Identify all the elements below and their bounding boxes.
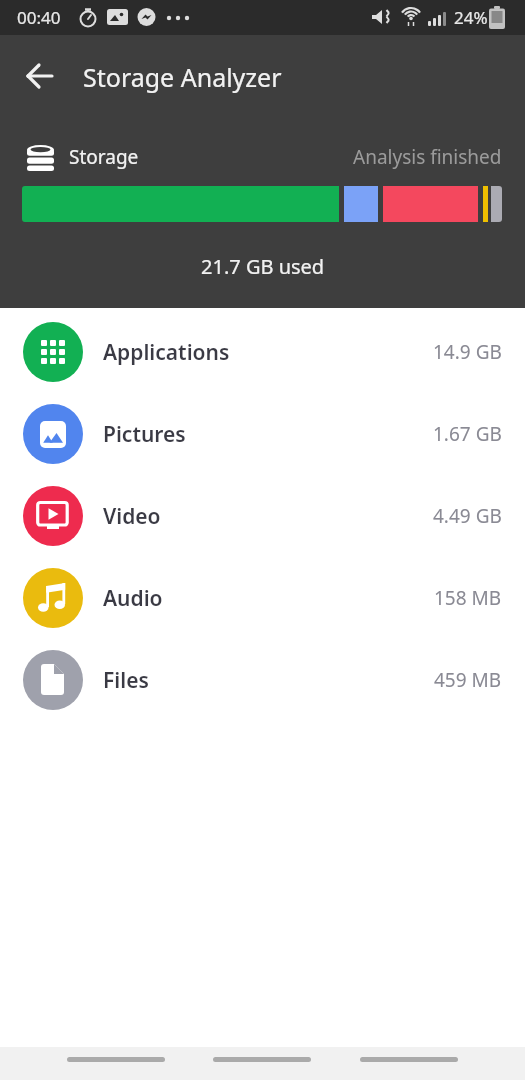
staticText: 1.67 GB — [433, 421, 502, 447]
staticText: 21.7 GB used — [201, 253, 325, 280]
staticText: Storage Analyzer — [83, 60, 282, 94]
staticText: 459 MB — [434, 667, 502, 693]
button[interactable] — [360, 1057, 458, 1062]
staticText: 4.49 GB — [433, 503, 502, 529]
button[interactable] — [213, 1057, 311, 1062]
staticText: 14.9 GB — [433, 339, 502, 365]
staticText: 158 MB — [434, 585, 502, 611]
staticText: Files — [103, 666, 149, 695]
button[interactable]: Pictures — [0, 393, 525, 475]
staticText: Applications — [103, 338, 230, 367]
staticText: Video — [103, 502, 161, 531]
button[interactable]: Video — [0, 475, 525, 557]
button[interactable]: Applications — [0, 311, 525, 393]
button[interactable] — [18, 54, 62, 98]
staticText: 00:40 — [17, 6, 61, 29]
staticText: 24% — [454, 6, 488, 29]
button[interactable]: Files — [0, 639, 525, 721]
staticText: Audio — [103, 584, 163, 613]
staticText: Storage — [69, 144, 139, 170]
staticText: Analysis finished — [353, 144, 502, 170]
button[interactable]: Audio — [0, 557, 525, 639]
staticText: Pictures — [103, 420, 186, 449]
button[interactable] — [67, 1057, 165, 1062]
